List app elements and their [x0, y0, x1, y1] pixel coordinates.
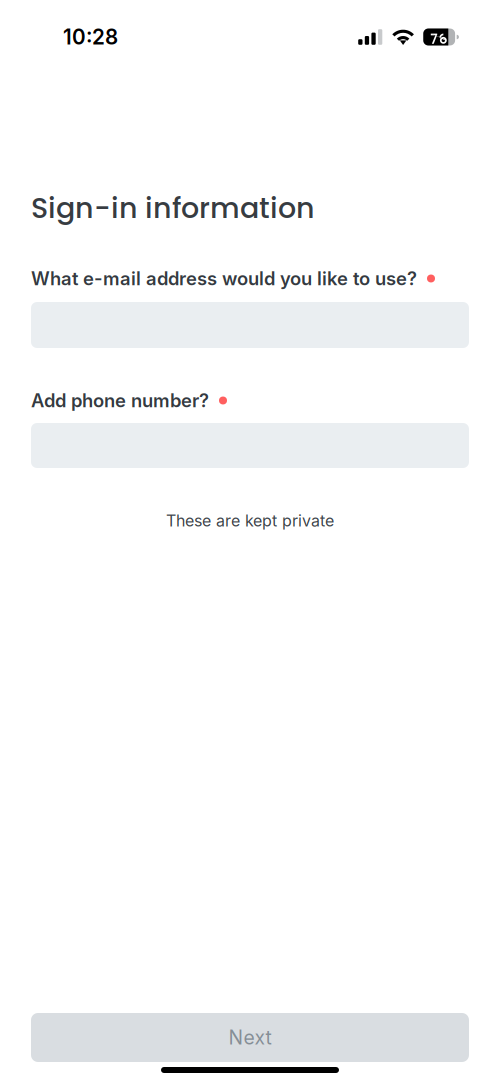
staticText: Sign-in information [31, 188, 315, 228]
staticText: These are kept private [166, 511, 334, 530]
staticText: 10:28 [63, 24, 118, 49]
button[interactable]: Next [31, 1013, 469, 1062]
staticText: What e-mail address would you like to us… [31, 267, 417, 290]
staticText: Add phone number? [31, 389, 209, 412]
staticText: Next [228, 1026, 271, 1049]
